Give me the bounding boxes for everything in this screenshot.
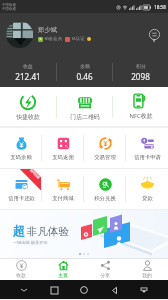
button[interactable]: 主页 — [42, 258, 84, 280]
button[interactable]: 积分 — [113, 57, 168, 87]
staticText: NFC收款 — [129, 112, 153, 120]
staticText: 支付商城 — [52, 195, 74, 202]
button[interactable]: Home — [78, 284, 90, 296]
staticText: 非凡体验 — [27, 225, 69, 238]
staticText: 主页 — [58, 272, 68, 278]
button[interactable]: 支付商城 — [42, 169, 84, 209]
button[interactable]: 信用卡还款 — [0, 169, 42, 209]
button[interactable]: Messages — [147, 27, 162, 42]
staticText: 中国联通 — [2, 7, 16, 11]
staticText: 超 — [13, 223, 25, 238]
staticText: 中国联通 — [2, 3, 16, 7]
button[interactable]: 分享 — [84, 258, 126, 280]
button[interactable]: 我的 — [126, 258, 168, 280]
staticText: 收款 — [16, 272, 26, 278]
staticText: 2098 — [131, 71, 150, 82]
staticText: 支码余额 — [10, 154, 32, 161]
staticText: 积分 — [136, 63, 146, 69]
staticText: 212.41 — [15, 71, 41, 82]
staticText: 收益 — [23, 63, 33, 69]
staticText: 快捷收款 — [16, 113, 40, 120]
button[interactable]: 收款 — [0, 258, 42, 280]
button[interactable]: 支码返佣 — [42, 128, 84, 168]
button[interactable]: 贷款 — [126, 169, 168, 209]
staticText: 我的 — [142, 272, 152, 278]
button[interactable]: 余额 — [57, 57, 112, 87]
button[interactable]: 门店二维码 — [57, 87, 112, 126]
staticText: 限时特惠 — [29, 169, 41, 180]
button[interactable]: Screenshot — [138, 284, 150, 296]
staticText: 铂金会员 — [44, 36, 62, 42]
button[interactable]: Hide navigation bar — [18, 284, 30, 296]
staticText: 一键出融 极享开放 — [13, 240, 48, 246]
button[interactable]: NFC收款 — [113, 87, 168, 126]
button[interactable]: 交易管理 — [84, 128, 126, 168]
button[interactable]: User avatar — [6, 21, 33, 48]
staticText: 余额 — [80, 63, 90, 69]
button[interactable]: 信用卡申请 — [126, 128, 168, 168]
button[interactable]: 收益 — [0, 57, 56, 87]
staticText: 支码返佣 — [52, 154, 74, 161]
button[interactable]: 超 — [0, 210, 168, 258]
button[interactable]: 积分兑换 — [84, 169, 126, 209]
staticText: 交易管理 — [94, 154, 116, 161]
button[interactable]: Back — [108, 284, 120, 296]
staticText: 郑少斌 — [38, 26, 58, 34]
staticText: 贷款 — [142, 195, 153, 202]
staticText: 18:58 — [154, 4, 166, 10]
staticText: 0.46 — [76, 71, 93, 82]
button[interactable]: 支码余额 — [0, 128, 42, 168]
button[interactable]: Recent apps — [48, 284, 60, 296]
staticText: 已认证 — [71, 36, 85, 42]
staticText: 信用卡还款 — [8, 195, 35, 202]
staticText: 分享 — [100, 272, 110, 278]
button[interactable]: 快捷收款 — [0, 87, 56, 126]
staticText: 门店二维码 — [70, 113, 100, 120]
staticText: 信用卡申请 — [134, 154, 161, 161]
staticText: 积分兑换 — [94, 195, 116, 202]
